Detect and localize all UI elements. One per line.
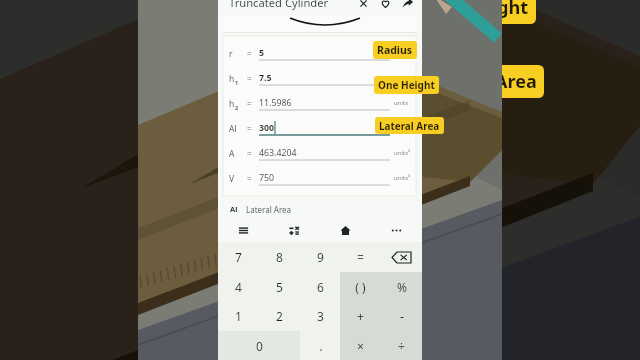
staticText: h	[229, 98, 235, 110]
staticText: =	[357, 249, 364, 265]
staticText: +	[357, 308, 364, 324]
button[interactable]: ×	[340, 331, 381, 360]
staticText: 1	[235, 308, 242, 324]
button[interactable]: Share	[396, 0, 418, 11]
staticText: Radius	[377, 43, 413, 57]
staticText: =	[247, 98, 252, 109]
staticText: units³	[394, 174, 411, 182]
button[interactable]: 8	[259, 242, 300, 272]
staticText: 2	[276, 308, 283, 324]
staticText: Al	[230, 204, 238, 214]
button[interactable]: Lateral Area	[375, 117, 444, 134]
staticText: 0	[256, 338, 263, 354]
button[interactable]: h	[223, 67, 416, 91]
button[interactable]: Close	[352, 0, 374, 11]
staticText: 5	[259, 47, 265, 59]
button[interactable]: Al	[223, 117, 416, 141]
button[interactable]: 1	[218, 301, 259, 331]
button[interactable]: 6	[300, 272, 341, 302]
button[interactable]: Backspace	[381, 242, 422, 272]
button[interactable]: +	[340, 301, 381, 331]
staticText: 2	[235, 104, 239, 111]
button[interactable]: ( )	[340, 272, 381, 302]
button[interactable]: -	[381, 301, 422, 331]
button[interactable]: r	[223, 42, 416, 66]
button[interactable]: More	[371, 218, 422, 242]
button[interactable]: Home	[320, 218, 371, 242]
staticText: units	[394, 99, 409, 107]
staticText: =	[247, 148, 252, 159]
button[interactable]: V	[223, 167, 416, 191]
staticText: 7.5	[259, 72, 272, 84]
staticText: 8	[276, 249, 283, 265]
button[interactable]: One Height	[418, 0, 536, 24]
button[interactable]: One Height	[374, 76, 439, 94]
button[interactable]: 0	[218, 331, 300, 360]
staticText: 7	[235, 249, 242, 265]
staticText: Lateral Area	[246, 204, 292, 215]
staticText: r	[229, 48, 233, 60]
staticText: Lateral Area	[379, 119, 440, 132]
staticText: 11.5986	[259, 97, 292, 109]
staticText: ( )	[355, 279, 366, 295]
button[interactable]: Calculator	[269, 218, 320, 242]
staticText: Al	[229, 123, 237, 135]
staticText: 6	[317, 279, 324, 295]
button[interactable]: ÷	[381, 331, 422, 360]
staticText: .	[319, 337, 323, 355]
button[interactable]: Menu	[218, 218, 269, 242]
staticText: V	[229, 173, 235, 185]
staticText: 750	[259, 172, 275, 184]
staticText: =	[247, 173, 252, 184]
staticText: Lateral Area	[427, 69, 537, 94]
staticText: units²	[394, 149, 411, 157]
button[interactable]: 2	[259, 301, 300, 331]
staticText: ÷	[398, 338, 405, 354]
staticText: -	[400, 308, 404, 324]
button[interactable]: Radius	[373, 41, 417, 59]
staticText: 3	[317, 308, 324, 324]
staticText: 463.4204	[259, 147, 297, 159]
button[interactable]: A	[223, 142, 416, 166]
staticText: 1	[235, 79, 239, 86]
staticText: Truncated Cylinder	[229, 0, 329, 10]
staticText: =	[247, 73, 252, 84]
button[interactable]: 3	[300, 301, 341, 331]
staticText: A	[229, 148, 235, 160]
button[interactable]: =	[340, 242, 381, 272]
button[interactable]: 4	[218, 272, 259, 302]
button[interactable]: Favorite	[374, 0, 396, 11]
staticText: 9	[317, 249, 324, 265]
button[interactable]: h	[223, 92, 416, 116]
staticText: 4	[235, 279, 242, 295]
staticText: 300	[259, 122, 275, 134]
staticText: =	[247, 123, 252, 134]
button[interactable]: %	[381, 272, 422, 302]
button[interactable]: 5	[259, 272, 300, 302]
button[interactable]: 9	[300, 242, 341, 272]
button[interactable]: Lateral Area	[420, 65, 544, 98]
button[interactable]: Al	[230, 200, 422, 218]
staticText: h	[229, 73, 235, 85]
staticText: ×	[357, 338, 364, 354]
button[interactable]: .	[300, 331, 341, 360]
staticText: %	[397, 279, 407, 295]
staticText: 5	[276, 279, 283, 295]
button[interactable]: 7	[218, 242, 259, 272]
staticText: One Height	[425, 0, 529, 20]
staticText: One Height	[378, 78, 435, 92]
staticText: =	[247, 48, 252, 59]
